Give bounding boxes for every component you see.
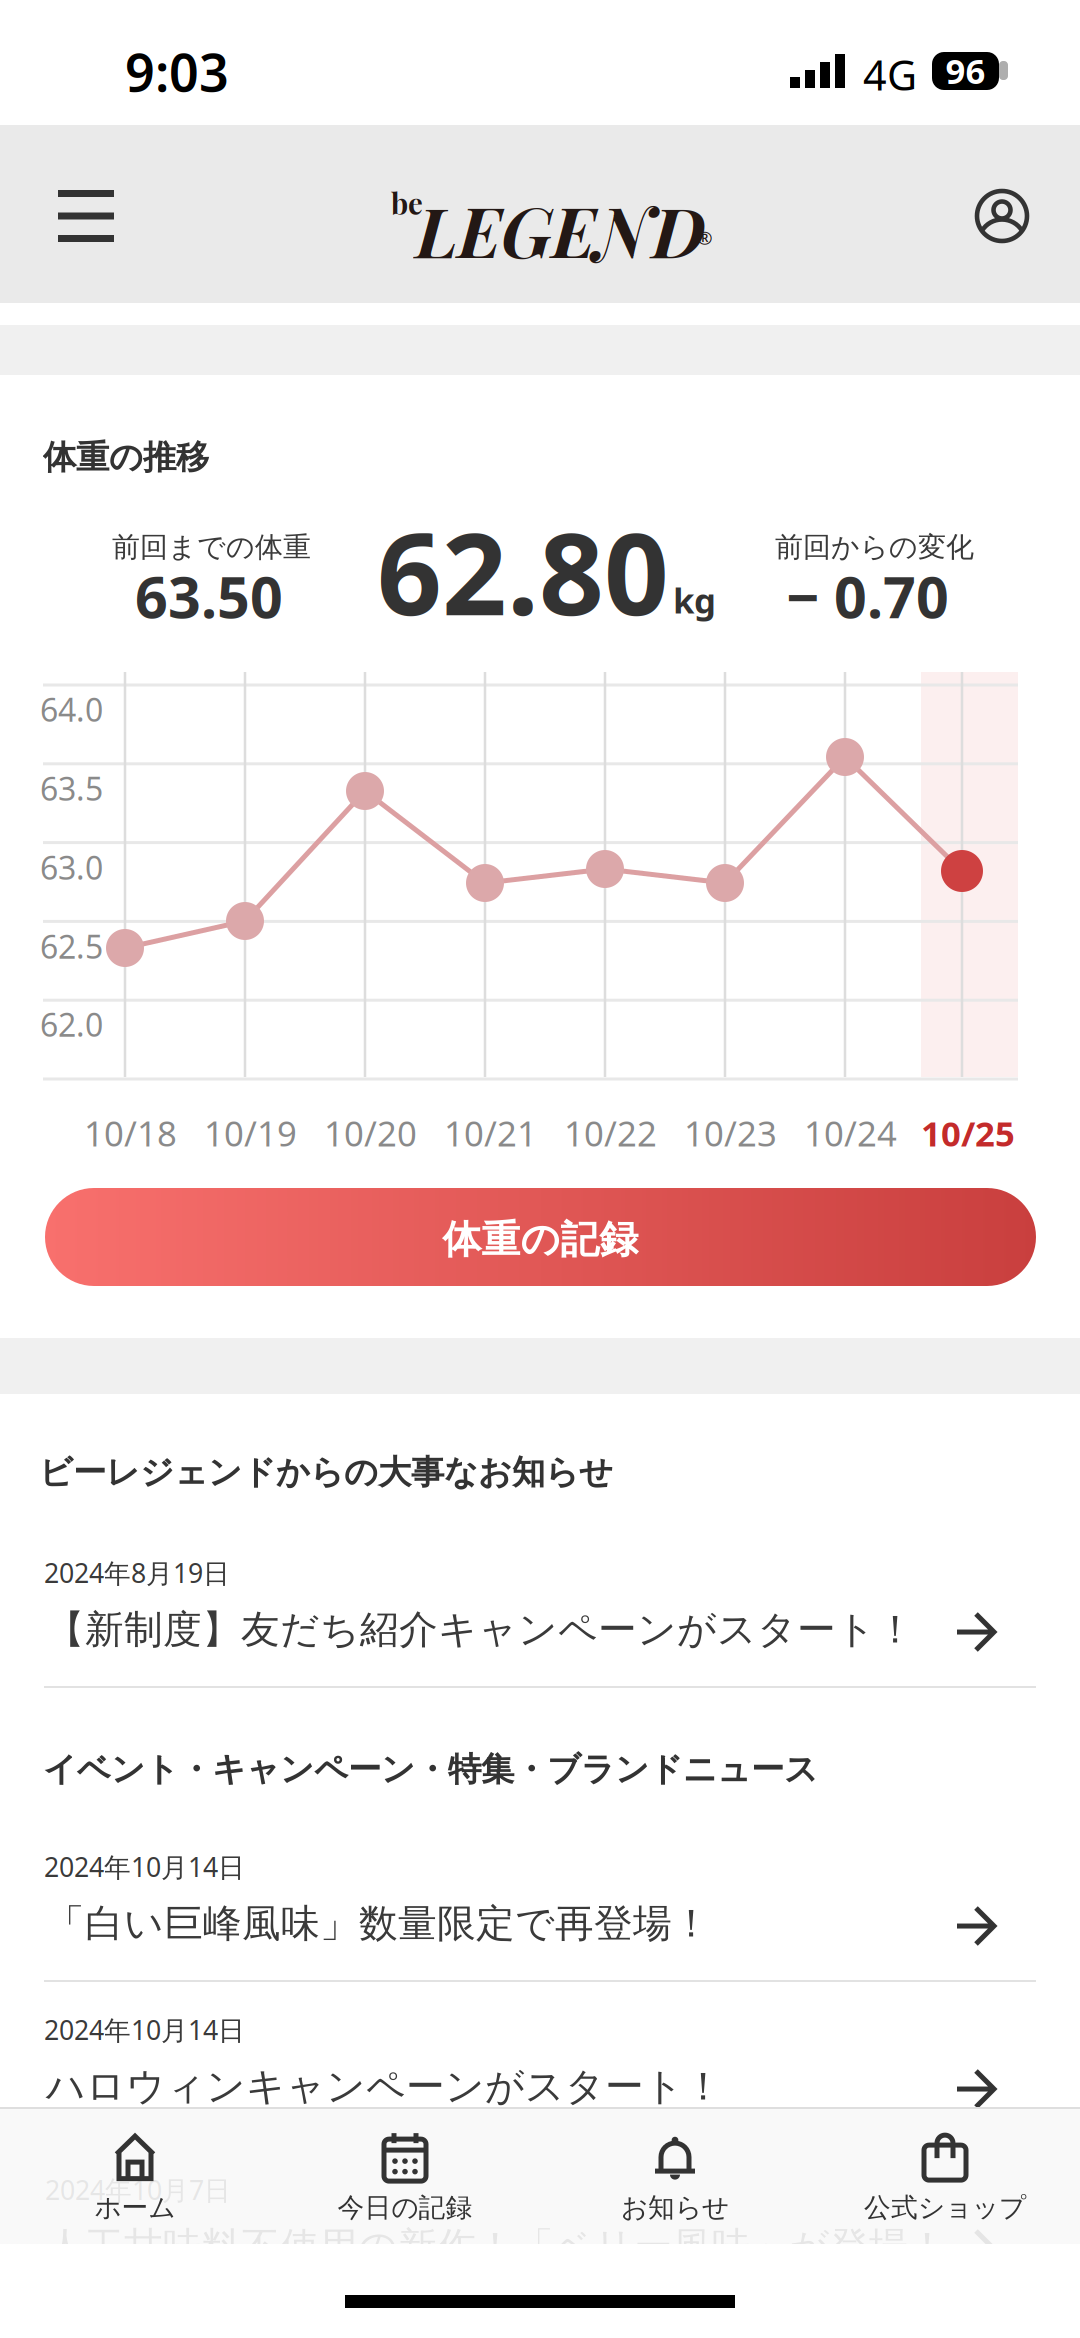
staticText: 10/24 (804, 1110, 897, 1156)
staticText: ハロウィンキャンペーンがスタート！ (46, 2063, 723, 2110)
staticText: 62.0 (40, 1003, 103, 1045)
staticText: 10/22 (564, 1110, 657, 1156)
staticText: 4G (863, 47, 917, 102)
staticText: 2024年10月7日 (45, 2172, 231, 2207)
staticText: 2024年8月19日 (44, 1555, 230, 1590)
button[interactable]: 体重の記録 (45, 1188, 1036, 1286)
button[interactable]: 今日の記録 (270, 2113, 540, 2236)
staticText: 63.5 (40, 767, 103, 809)
staticText: be (391, 183, 423, 222)
staticText: 体重の推移 (43, 437, 209, 478)
staticText: 前回までの体重 (112, 530, 311, 564)
button[interactable]: 2024年10月14日 (0, 2003, 1080, 2139)
staticText: 公式ショップ (864, 2191, 1026, 2224)
staticText: 63.50 (135, 558, 283, 634)
staticText: 2024年10月14日 (44, 1849, 245, 1884)
button[interactable]: Account (947, 161, 1057, 271)
staticText: − 0.70 (786, 558, 949, 634)
staticText: 人工甘味料不使用の新作！「ベリー風味」が登場！ (46, 2223, 947, 2270)
staticText: 9:03 (125, 37, 229, 106)
button[interactable]: 2024年8月19日 (0, 1546, 1080, 1682)
staticText: 10/18 (84, 1110, 177, 1156)
button[interactable]: ホーム (0, 2113, 270, 2236)
staticText: 62.5 (40, 925, 103, 967)
staticText: 【新制度】友だち紹介キャンペーンがスタート！ (46, 1606, 915, 1653)
staticText: kg (673, 577, 716, 623)
staticText: LEGEND (416, 183, 705, 275)
button[interactable]: Menu (30, 162, 142, 270)
staticText: 10/20 (324, 1110, 417, 1156)
staticText: 今日の記録 (337, 2191, 472, 2224)
staticText: 10/19 (204, 1110, 297, 1156)
button[interactable]: 2024年10月14日 (0, 1840, 1080, 1976)
staticText: お知らせ (621, 2191, 729, 2224)
staticText: イベント・キャンペーン・特集・ブランドニュース (43, 1749, 818, 1790)
button[interactable]: お知らせ (540, 2113, 810, 2236)
staticText: 63.0 (40, 846, 103, 888)
staticText: 10/21 (444, 1110, 537, 1156)
staticText: 96 (945, 47, 985, 93)
staticText: 10/23 (684, 1110, 777, 1156)
staticText: 62.80 (377, 496, 669, 646)
staticText: 前回からの変化 (775, 530, 974, 564)
staticText: 「白い巨峰風味」数量限定で再登場！ (46, 1900, 711, 1947)
staticText: 64.0 (40, 688, 103, 730)
staticText: ホーム (94, 2191, 175, 2224)
staticText: 2024年10月14日 (44, 2012, 245, 2047)
staticText: 10/25 (921, 1110, 1015, 1156)
staticText: ® (697, 225, 713, 250)
staticText: 体重の記録 (442, 1216, 638, 1263)
button[interactable]: 公式ショップ (810, 2113, 1080, 2236)
staticText: ビーレジェンドからの大事なお知らせ (39, 1452, 613, 1493)
